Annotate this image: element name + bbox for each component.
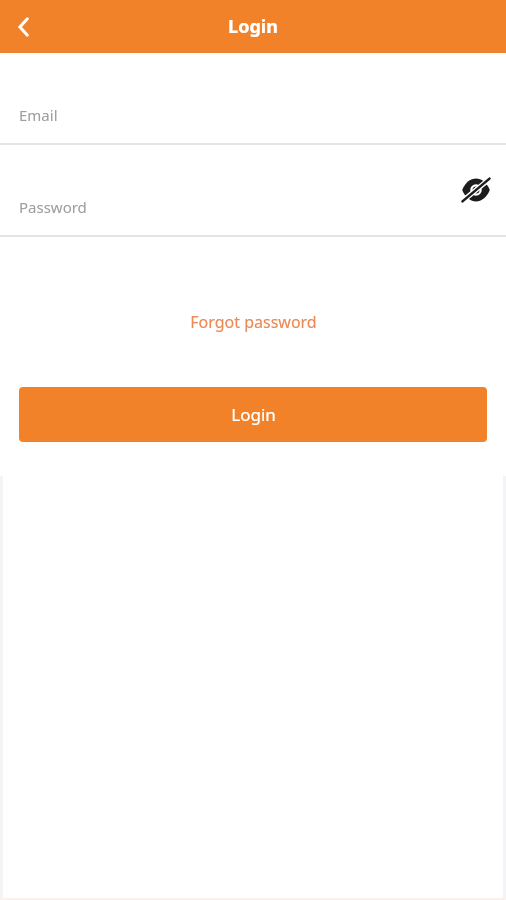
button[interactable]: Login (19, 387, 487, 442)
staticText: Login (228, 14, 278, 39)
staticText: Login (231, 403, 276, 426)
staticText: Password (19, 197, 87, 217)
button[interactable]: Show password (452, 166, 500, 214)
button[interactable]: Password (0, 145, 506, 235)
button[interactable]: Forgot password (178, 305, 329, 339)
button[interactable]: Email (0, 53, 506, 143)
button[interactable]: Back (0, 3, 48, 51)
staticText: Email (19, 105, 58, 125)
staticText: Forgot password (190, 311, 317, 333)
